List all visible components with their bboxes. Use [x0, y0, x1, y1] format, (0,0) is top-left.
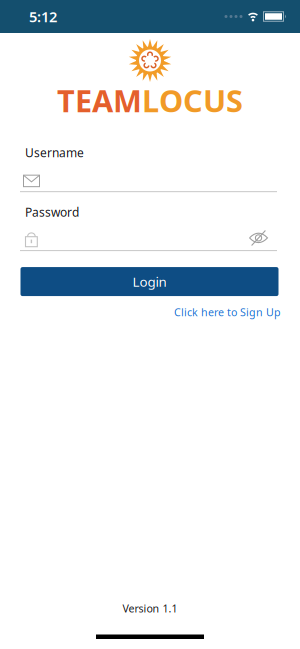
staticText: 5:12 — [29, 7, 57, 26]
staticText: Login — [132, 273, 166, 290]
button[interactable]: Username — [0, 175, 300, 192]
button[interactable]: Click here to Sign Up — [174, 305, 281, 319]
staticText: Username — [25, 145, 84, 161]
button[interactable]: Password — [25, 229, 241, 247]
staticText: Version 1.1 — [122, 601, 177, 615]
button[interactable]: Show password — [249, 232, 268, 244]
staticText: Password — [25, 204, 79, 220]
staticText: TEAM — [57, 80, 142, 121]
staticText: LOCUS — [142, 80, 243, 121]
button[interactable]: Login — [20, 267, 278, 296]
staticText: Click here to Sign Up — [174, 305, 281, 319]
